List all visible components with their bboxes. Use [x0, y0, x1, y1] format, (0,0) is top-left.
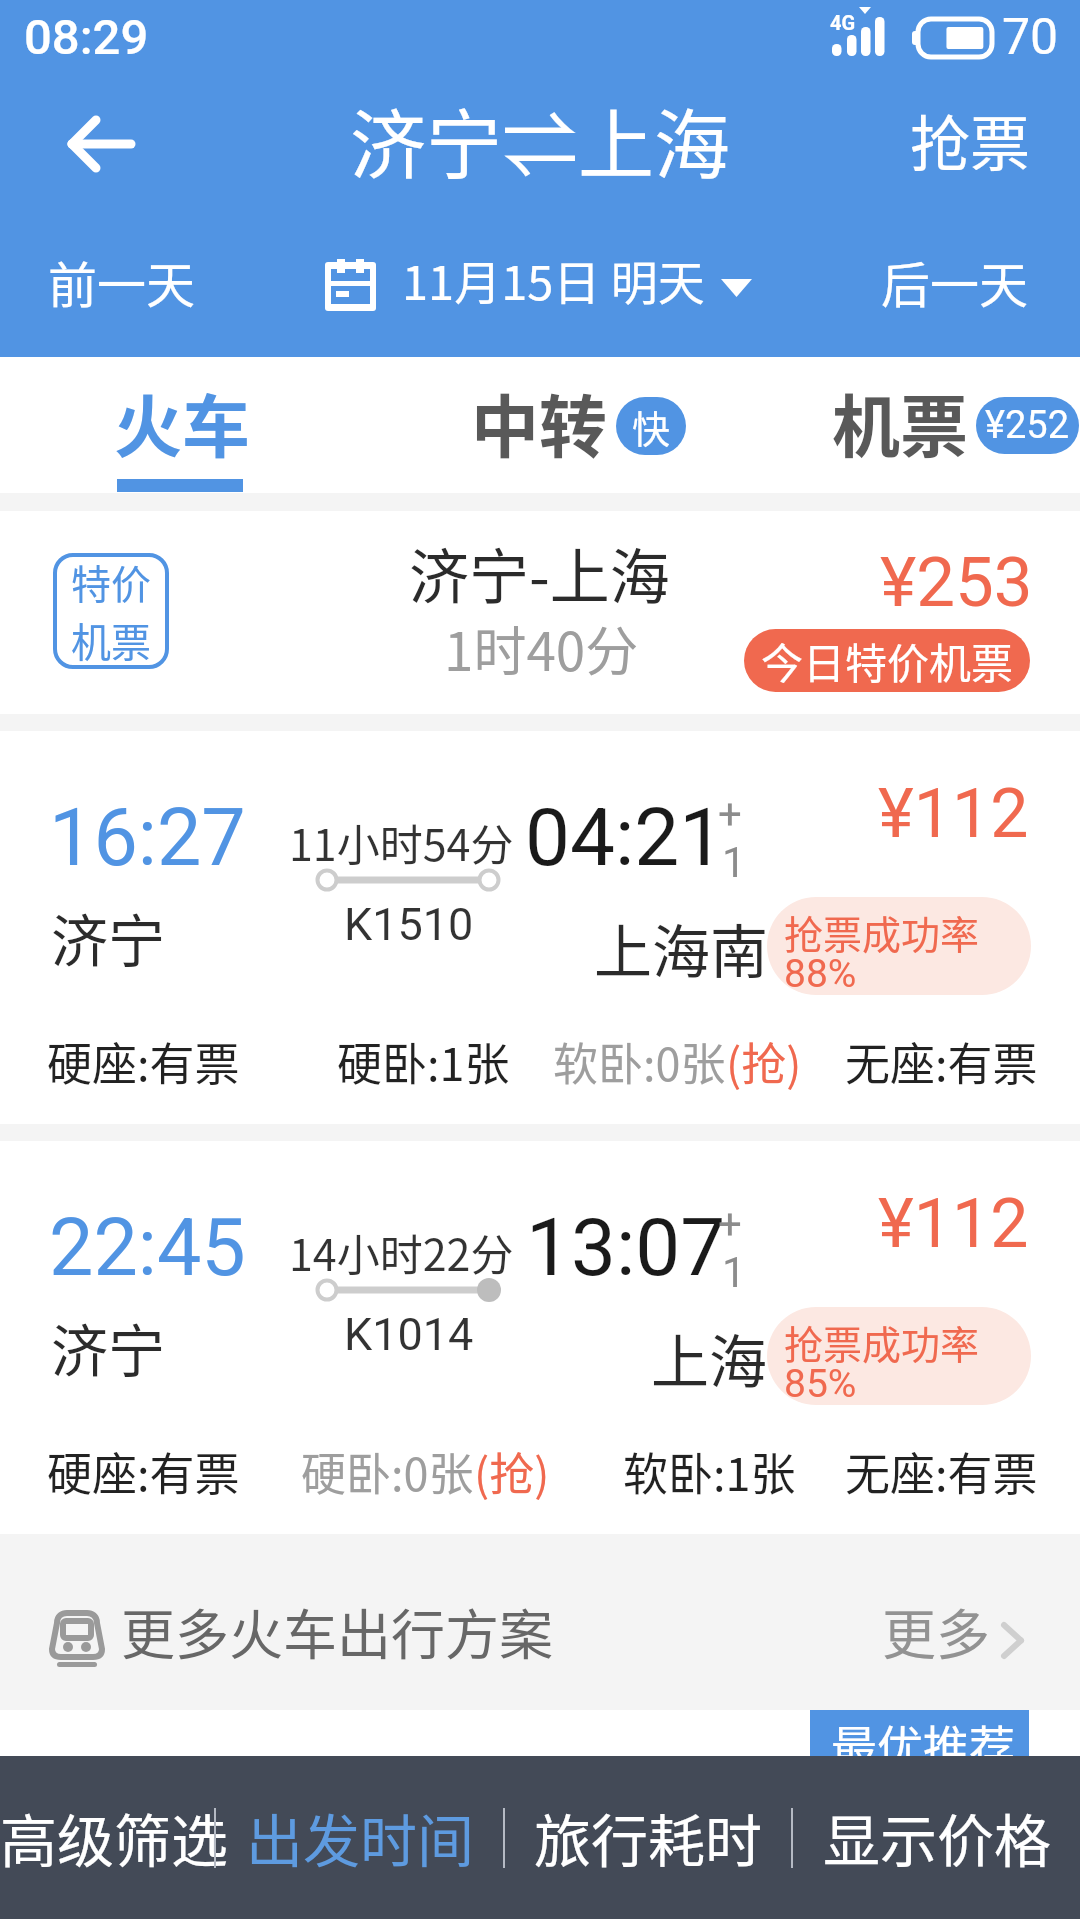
staticText: 硬卧:1张	[337, 1029, 510, 1094]
button[interactable]: 16:27	[0, 731, 1080, 1124]
button[interactable]: 11月15日 明天	[310, 222, 770, 332]
staticText: 14小时22分	[289, 1221, 514, 1283]
staticText: 济宁	[51, 896, 165, 979]
button[interactable]: 旅行耗时	[505, 1756, 791, 1919]
staticText: +	[718, 1200, 742, 1249]
staticText: 更多火车出行方案	[121, 1592, 553, 1670]
staticText: 上海	[651, 1316, 768, 1400]
staticText: 85%	[784, 1361, 857, 1405]
button[interactable]: 特价	[0, 511, 1080, 714]
button[interactable]: 显示价格	[793, 1756, 1080, 1919]
staticText: 软卧:0张	[553, 1029, 726, 1094]
button[interactable]: 前一天	[48, 246, 196, 317]
staticText: 16:27	[49, 792, 246, 885]
staticText: 无座:有票	[845, 1439, 1038, 1504]
staticText: K1510	[344, 898, 474, 951]
staticText: 快	[632, 399, 671, 454]
staticText: ¥253	[880, 542, 1033, 623]
button[interactable]: 抢票	[910, 96, 1030, 183]
button[interactable]: 机票	[820, 357, 1080, 493]
staticText: (抢)	[726, 1029, 802, 1094]
staticText: 高级筛选	[0, 1796, 214, 1879]
staticText: 软卧:1张	[623, 1439, 796, 1504]
staticText: ¥252	[985, 403, 1070, 448]
button[interactable]: 出发时间	[216, 1756, 503, 1919]
staticText: 特价	[71, 553, 151, 611]
staticText: 1	[722, 1248, 746, 1297]
staticText: K1014	[344, 1308, 474, 1361]
staticText: 08:29	[24, 9, 149, 66]
staticText: 抢票成功率	[784, 1314, 980, 1370]
staticText: 上海南	[594, 906, 769, 990]
staticText: (抢)	[474, 1439, 550, 1504]
staticText: 无座:有票	[845, 1029, 1038, 1094]
staticText: 济宁	[51, 1306, 165, 1389]
staticText: 今日特价机票	[761, 630, 1014, 691]
staticText: 11月15日 明天	[402, 245, 705, 313]
staticText: 硬卧:0张	[301, 1439, 474, 1504]
staticText: ¥112	[878, 1184, 1029, 1264]
button[interactable]: 高级筛选	[0, 1756, 214, 1919]
staticText: 1时40分	[444, 610, 639, 687]
staticText: 旅行耗时	[534, 1796, 762, 1879]
button[interactable]: 中转	[460, 357, 700, 493]
staticText: 出发时间	[246, 1796, 474, 1879]
staticText: 中转	[471, 373, 608, 471]
staticText: 11小时54分	[289, 811, 514, 873]
staticText: 火车	[114, 373, 251, 471]
staticText: 机票	[71, 611, 151, 669]
staticText: 显示价格	[823, 1796, 1051, 1879]
staticText: 88%	[784, 951, 857, 995]
staticText: 抢票成功率	[784, 904, 980, 960]
staticText: 硬座:有票	[47, 1439, 240, 1504]
button[interactable]: 最优推荐	[810, 1710, 1029, 1756]
staticText: 机票	[832, 373, 969, 471]
staticText: 04:21	[525, 791, 725, 885]
button[interactable]: Back	[38, 76, 164, 202]
staticText: 70	[1002, 8, 1059, 67]
staticText: 济宁⇌上海	[350, 85, 730, 195]
staticText: 13:07	[526, 1201, 726, 1295]
staticText: 硬座:有票	[47, 1029, 240, 1094]
button[interactable]: 22:45	[0, 1141, 1080, 1534]
staticText: 济宁-上海	[409, 529, 670, 616]
button[interactable]: 火车	[0, 357, 360, 493]
staticText: 4G	[830, 11, 856, 34]
staticText: 1	[722, 838, 746, 887]
staticText: 22:45	[49, 1202, 246, 1295]
button[interactable]: 后一天	[881, 246, 1029, 317]
button[interactable]: 更多火车出行方案	[0, 1534, 1080, 1710]
staticText: +	[718, 790, 742, 839]
staticText: 最优推荐	[831, 1711, 1015, 1756]
staticText: ¥112	[878, 774, 1029, 854]
staticText: 更多	[882, 1592, 990, 1670]
